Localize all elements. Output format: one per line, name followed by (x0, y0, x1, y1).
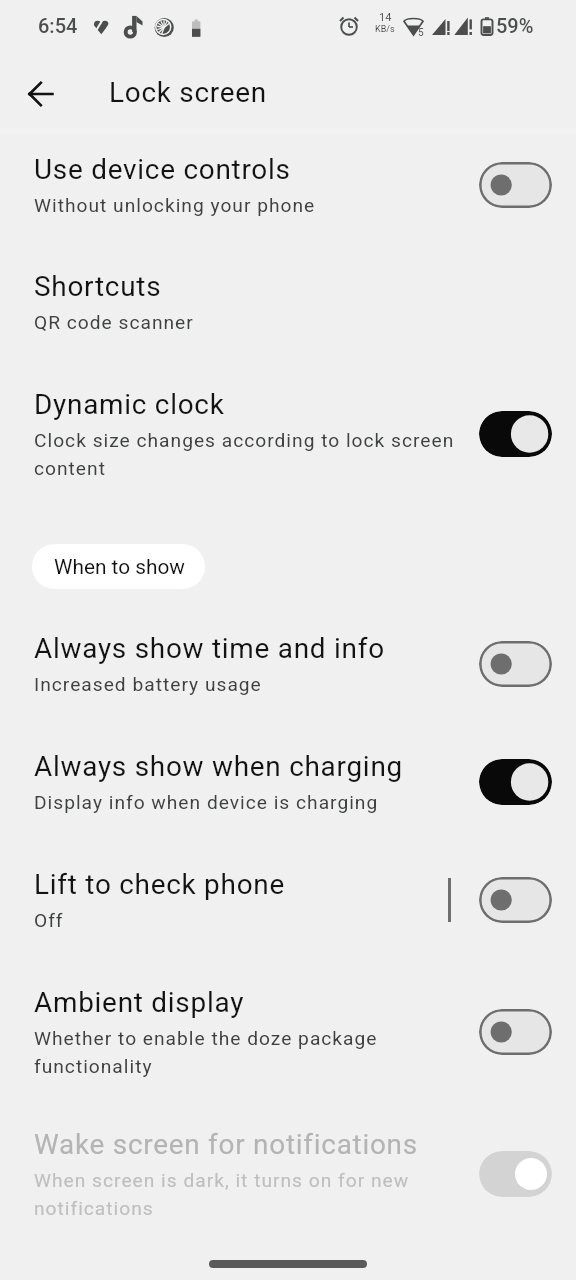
button[interactable]: Ambient display (0, 970, 576, 1094)
button[interactable]: Toggle (479, 877, 552, 923)
button[interactable]: Toggle (479, 1151, 552, 1197)
staticText: Always show when charging (34, 750, 403, 783)
button[interactable]: When to show (32, 544, 205, 589)
staticText: Wake screen for notifications (34, 1128, 418, 1161)
staticText: Dynamic clock (34, 388, 225, 421)
staticText: Ambient display (34, 986, 245, 1019)
staticText: Whether to enable the doze package funct… (34, 1027, 465, 1078)
button[interactable]: Toggle (479, 162, 552, 208)
staticText: KB/s (375, 24, 395, 35)
button[interactable]: Toggle (479, 1009, 552, 1055)
staticText: Always show time and info (34, 632, 385, 665)
staticText: When screen is dark, it turns on for new… (34, 1169, 465, 1220)
button[interactable]: Lift to check phone (0, 852, 576, 948)
staticText: 6:54 (38, 14, 78, 37)
staticText: Lock screen (109, 76, 267, 109)
staticText: Increased battery usage (34, 673, 262, 696)
staticText: Display info when device is charging (34, 791, 379, 814)
button[interactable]: Dynamic clock (0, 372, 576, 496)
staticText: 59% (496, 14, 534, 37)
staticText: Without unlocking your phone (34, 194, 316, 217)
staticText: Shortcuts (34, 270, 162, 303)
staticText: 14 (379, 11, 392, 24)
staticText: Off (34, 909, 64, 932)
button[interactable]: Shortcuts (0, 254, 576, 350)
staticText: When to show (54, 555, 185, 579)
button[interactable]: Toggle (479, 759, 552, 805)
button[interactable]: Always show when charging (0, 734, 576, 830)
staticText: QR code scanner (34, 311, 194, 334)
button[interactable]: Always show time and info (0, 616, 576, 712)
staticText: Clock size changes according to lock scr… (34, 429, 465, 480)
staticText: 5 (418, 27, 424, 39)
button[interactable]: Wake screen for notifications (0, 1112, 576, 1236)
staticText: Lift to check phone (34, 868, 285, 901)
staticText: Use device controls (34, 153, 291, 186)
button[interactable]: Use device controls (0, 137, 576, 233)
button[interactable]: Back (17, 70, 65, 118)
button[interactable]: Toggle (479, 411, 552, 457)
button[interactable]: Toggle (479, 641, 552, 687)
